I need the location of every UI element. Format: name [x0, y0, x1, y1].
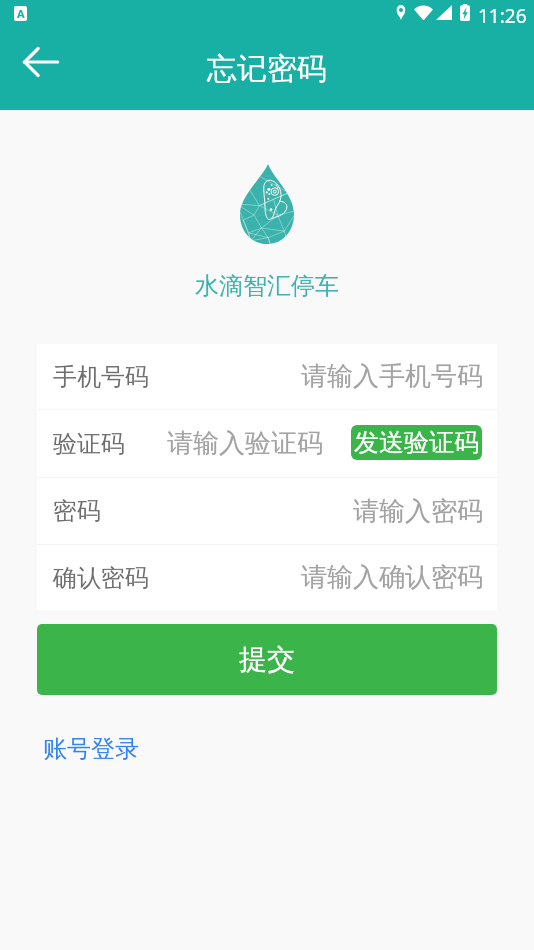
staticText: 密码: [53, 496, 101, 526]
staticText: 确认密码: [53, 563, 149, 593]
staticText: 请输入确认密码: [301, 561, 483, 594]
button[interactable]: 发送验证码: [351, 425, 482, 460]
staticText: 忘记密码: [207, 50, 327, 88]
staticText: 请输入验证码: [167, 427, 323, 460]
button[interactable]: 密码: [37, 478, 497, 544]
staticText: 请输入手机号码: [301, 360, 483, 393]
staticText: 水滴智汇停车: [195, 271, 339, 301]
button[interactable]: 验证码: [37, 410, 497, 477]
staticText: 请输入密码: [353, 495, 483, 528]
staticText: 手机号码: [53, 362, 149, 392]
staticText: 账号登录: [43, 734, 139, 764]
button[interactable]: Back: [17, 38, 65, 86]
button[interactable]: 确认密码: [37, 545, 497, 610]
staticText: 验证码: [53, 429, 125, 459]
staticText: A: [17, 6, 25, 21]
button[interactable]: 手机号码: [37, 344, 497, 409]
staticText: 11:26: [478, 3, 527, 29]
button[interactable]: 提交: [37, 624, 497, 695]
staticText: 发送验证码: [354, 427, 479, 458]
staticText: 提交: [239, 642, 295, 677]
button[interactable]: 账号登录: [37, 726, 145, 772]
